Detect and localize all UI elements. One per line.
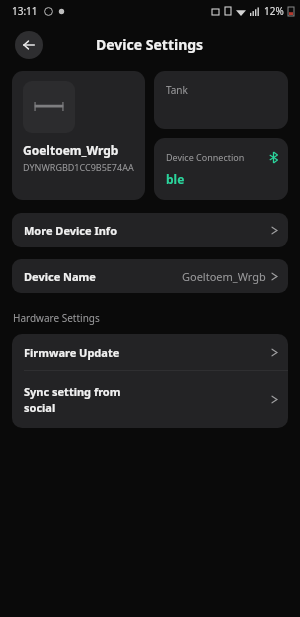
button[interactable]: Device Connection: [154, 138, 288, 200]
staticText: Goeltoem_Wrgb: [23, 142, 119, 158]
staticText: Device Settings: [96, 35, 204, 54]
button[interactable]: Tank: [154, 71, 288, 129]
staticText: 13:11: [12, 4, 38, 18]
staticText: Tank: [166, 83, 188, 97]
staticText: Firmware Update: [24, 345, 120, 360]
other: Bluetooth: [269, 152, 278, 163]
staticText: DYNWRGBD1CC9B5E74AA: [23, 161, 134, 173]
button[interactable]: Back: [15, 31, 43, 59]
staticText: Goeltoem_Wrgb: [182, 269, 266, 284]
staticText: ble: [166, 171, 185, 187]
button[interactable]: More Device Info: [12, 213, 288, 247]
button[interactable]: Firmware Update: [12, 334, 288, 370]
button[interactable]: Sync setting from social: [12, 371, 288, 428]
staticText: 12%: [264, 4, 284, 18]
staticText: Device Connection: [166, 151, 245, 163]
staticText: Device Name: [24, 269, 96, 284]
staticText: More Device Info: [24, 223, 118, 238]
staticText: Hardware Settings: [13, 311, 100, 325]
button[interactable]: Device Name: [12, 259, 288, 293]
staticText: Sync setting from social: [24, 384, 174, 415]
button[interactable]: Goeltoem_Wrgb: [12, 71, 145, 200]
